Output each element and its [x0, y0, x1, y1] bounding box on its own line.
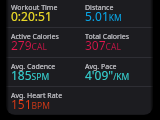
staticText: Avg. Heart Rate: [11, 91, 63, 101]
staticText: 307CAL: [85, 37, 121, 53]
button[interactable]: Total Calories: [80, 28, 153, 55]
staticText: Avg. Pace: [85, 62, 117, 72]
button[interactable]: Avg. Pace: [80, 58, 153, 85]
staticText: Active Calories: [11, 32, 59, 42]
staticText: 4'09"/KM: [85, 67, 130, 83]
button[interactable]: Avg. Cadence: [6, 58, 80, 85]
button[interactable]: Workout Time: [6, 0, 80, 26]
staticText: 185SPM: [11, 67, 50, 83]
staticText: 279CAL: [11, 37, 47, 53]
staticText: 5.01KM: [85, 8, 122, 24]
staticText: 151BPM: [11, 96, 50, 112]
staticText: Workout Time: [11, 3, 58, 13]
staticText: Total Calories: [85, 32, 130, 42]
button[interactable]: Distance: [80, 0, 153, 26]
button[interactable]: Active Calories: [6, 28, 80, 55]
button[interactable]: Avg. Heart Rate: [6, 87, 80, 114]
staticText: 0:20:51: [11, 8, 52, 24]
staticText: Avg. Cadence: [11, 62, 56, 72]
staticText: Distance: [85, 3, 114, 13]
